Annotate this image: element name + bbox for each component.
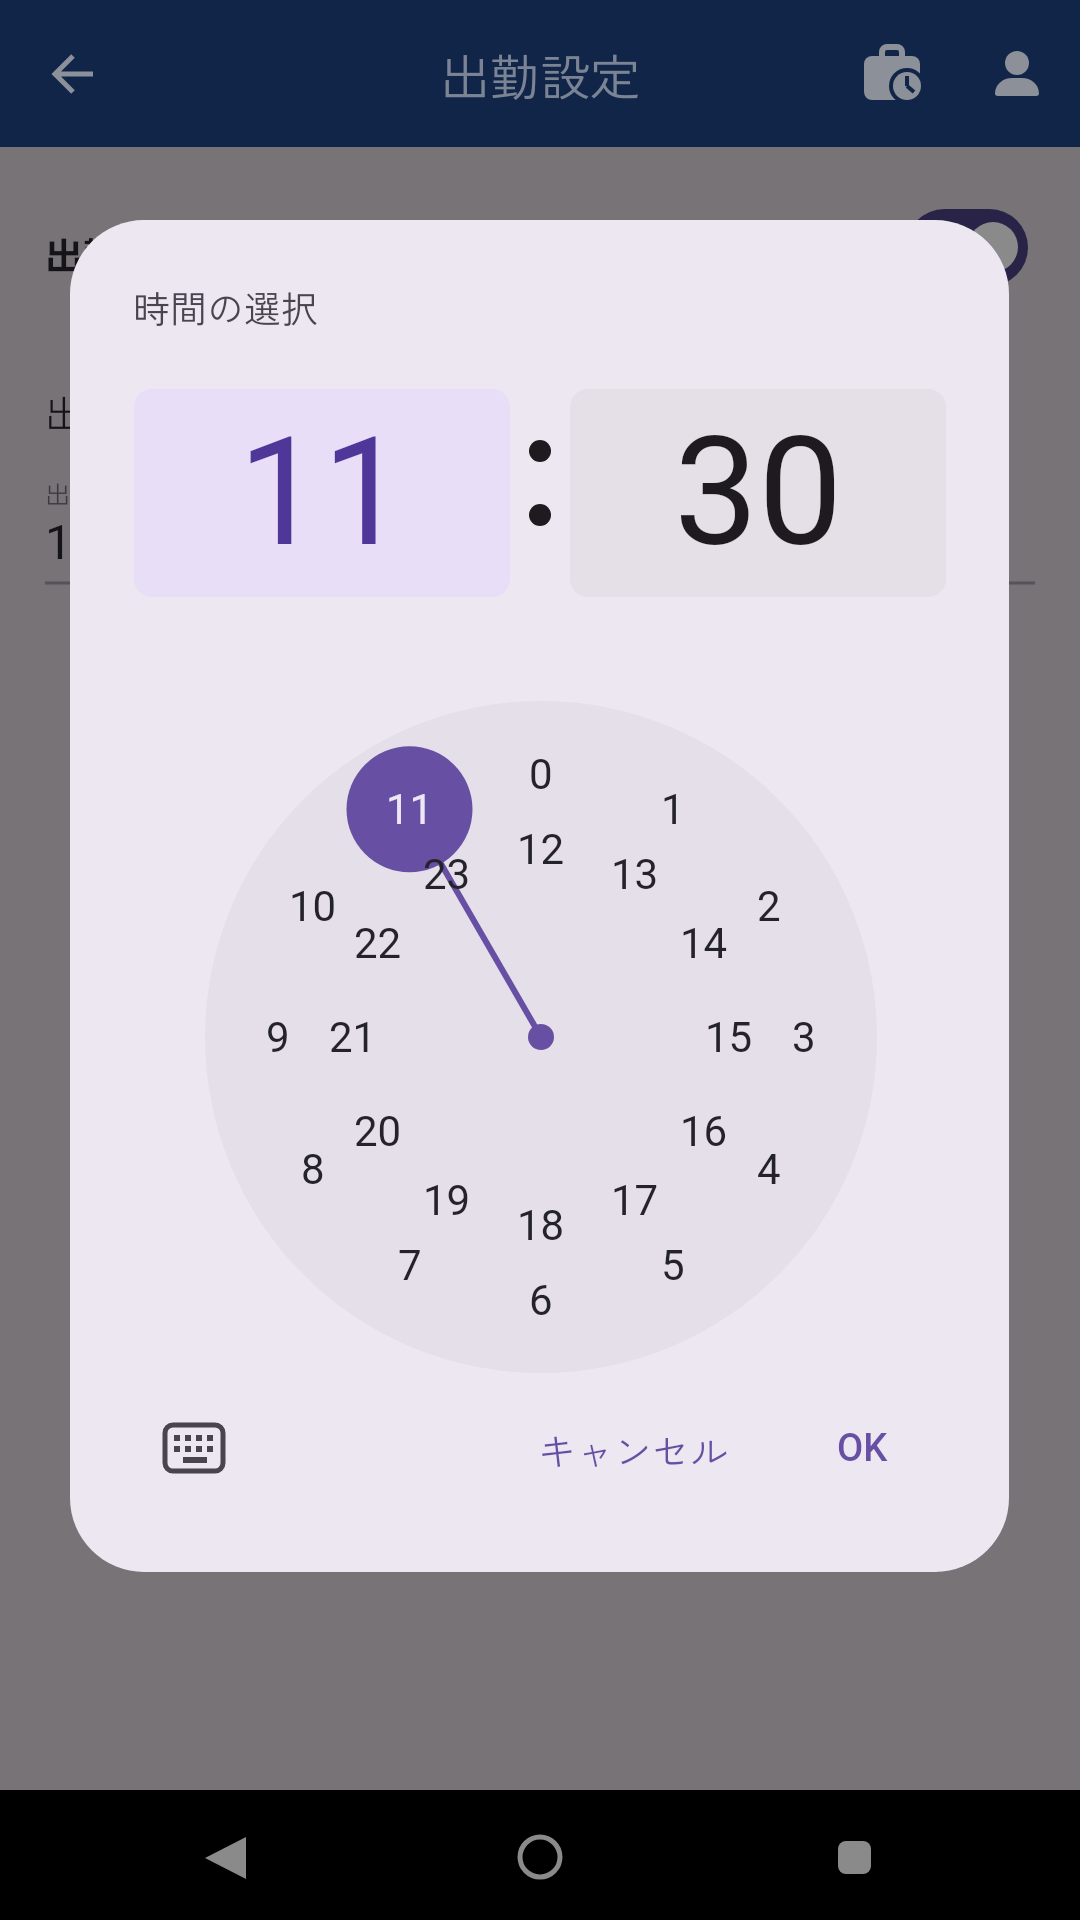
staticText: 出勤時刻 — [45, 475, 146, 511]
staticText: 出勤通知 — [45, 226, 198, 281]
staticText: 7 — [398, 1241, 422, 1290]
button[interactable]: 11 — [134, 389, 510, 597]
staticText: 15 — [705, 1013, 753, 1062]
button[interactable] — [804, 1825, 904, 1889]
staticText: 時間の選択 — [133, 280, 318, 334]
button[interactable] — [490, 1825, 590, 1889]
staticText: 18 — [517, 1201, 565, 1250]
button[interactable] — [178, 1827, 278, 1891]
staticText: 23 — [423, 850, 471, 899]
staticText: 2 — [757, 882, 781, 931]
staticText: 11 — [238, 405, 407, 581]
staticText: 5 — [661, 1241, 685, 1290]
staticText: 13 — [611, 850, 659, 899]
staticText: 10 — [289, 882, 337, 931]
button[interactable] — [30, 50, 118, 98]
button[interactable]: OK — [797, 1408, 927, 1488]
staticText: 19 — [423, 1176, 471, 1225]
staticText: 12 — [517, 825, 565, 874]
staticText: 30 — [674, 405, 843, 581]
staticText: 14 — [680, 919, 728, 968]
staticText: 8 — [301, 1145, 325, 1194]
staticText: 4 — [757, 1145, 781, 1194]
button[interactable]: 30 — [570, 389, 946, 597]
staticText: 17 — [611, 1176, 659, 1225]
button[interactable] — [848, 40, 938, 110]
staticText: 11:30 — [45, 514, 165, 570]
staticText: 6 — [529, 1276, 553, 1325]
staticText: 出勤設定 — [440, 38, 640, 110]
staticText: キャンセル — [538, 1422, 729, 1477]
button[interactable] — [906, 209, 1028, 286]
staticText: 11 — [386, 785, 434, 834]
button[interactable] — [150, 1405, 238, 1493]
staticText: 9 — [266, 1013, 290, 1062]
button[interactable]: キャンセル — [513, 1409, 753, 1489]
staticText: 20 — [354, 1107, 402, 1156]
staticText: 0 — [529, 750, 553, 799]
staticText: 16 — [680, 1107, 728, 1156]
staticText: OK — [837, 1426, 888, 1471]
staticText: 出勤時刻 — [45, 384, 198, 439]
button[interactable] — [985, 40, 1049, 110]
staticText: 3 — [792, 1013, 816, 1062]
staticText: 22 — [354, 919, 402, 968]
staticText: 1 — [661, 785, 685, 834]
staticText: 21 — [329, 1013, 377, 1062]
